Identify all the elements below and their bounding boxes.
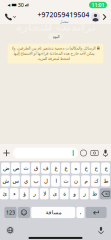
staticText: ئ [2, 191, 6, 197]
staticText: مسافة [45, 209, 61, 215]
button[interactable]: ى [50, 188, 59, 199]
button[interactable]: Next keyboard [6, 226, 14, 234]
button[interactable]: ظ [90, 188, 99, 199]
staticText: ة [63, 191, 66, 197]
staticText: ط [103, 178, 108, 184]
button[interactable]: Contact info [91, 12, 100, 21]
button[interactable]: ث [21, 163, 30, 174]
button[interactable]: Stickers [78, 144, 89, 162]
button[interactable]: ع [61, 163, 70, 174]
button[interactable]: خ [81, 163, 90, 174]
button[interactable]: ن [71, 175, 80, 187]
staticText: 123 [6, 209, 15, 216]
staticText: ح [94, 165, 97, 171]
button[interactable]: ف [41, 163, 50, 174]
button[interactable]: ؤ [20, 188, 29, 199]
staticText: ص [12, 165, 18, 171]
staticText: ترايدنت للتجارة [15, 21, 95, 33]
button[interactable]: ت [61, 175, 70, 187]
staticText: ل [43, 178, 47, 184]
button[interactable]: ل [41, 175, 50, 187]
button[interactable]: ح [91, 163, 100, 174]
staticText: الرسائل والمكالمات محمية بتشفير تام بين … [11, 46, 95, 61]
button[interactable]: ط [101, 175, 110, 187]
button[interactable]: ز [80, 188, 89, 199]
button[interactable]: Voice message [100, 144, 111, 162]
staticText: ث [23, 165, 28, 171]
staticText: اليوم [52, 34, 59, 39]
staticText: لا [43, 191, 46, 197]
staticText: ع [64, 165, 67, 171]
button[interactable]: غ [51, 163, 60, 174]
button[interactable]: لا [40, 188, 49, 199]
button[interactable]: ق [31, 163, 40, 174]
button[interactable]: Dictation [97, 226, 105, 234]
staticText: × [105, 190, 108, 197]
button[interactable]: Key [18, 207, 30, 218]
staticText: ◂ [7, 2, 10, 8]
staticText: ق [33, 165, 37, 171]
staticText: ء [13, 191, 16, 197]
button[interactable]: الرسائل والمكالمات محمية بتشفير تام بين … [7, 43, 103, 63]
staticText: ن [73, 178, 77, 184]
staticText: و [73, 191, 76, 197]
button[interactable]: Call [3, 10, 18, 24]
staticText: ش [2, 178, 9, 184]
staticText: غ [54, 165, 57, 171]
button[interactable]: Key [100, 188, 111, 199]
staticText: ى [52, 191, 56, 197]
button[interactable]: Return [86, 207, 107, 218]
button[interactable]: ب [31, 175, 40, 187]
staticText: ف [42, 165, 48, 171]
button[interactable]: ج [101, 163, 110, 174]
staticText: 11:01 [91, 1, 104, 9]
button[interactable]: ئ [0, 188, 9, 199]
staticText: م [84, 178, 87, 184]
staticText: ا [55, 178, 56, 184]
button[interactable]: Camera [89, 144, 100, 162]
button[interactable]: م [81, 175, 90, 187]
button[interactable]: 123 [4, 207, 17, 218]
staticText: متصل [59, 19, 68, 24]
button[interactable]: Attach [0, 144, 13, 162]
staticText: ؤ [23, 191, 26, 197]
button[interactable]: Back [100, 10, 109, 24]
button[interactable]: ء [10, 188, 19, 199]
button[interactable]: ي [21, 175, 30, 187]
button[interactable]: ش [1, 175, 10, 187]
button[interactable]: ا [51, 175, 60, 187]
button[interactable]: س [11, 175, 20, 187]
staticText: ه [74, 165, 77, 171]
button[interactable]: و [70, 188, 79, 199]
staticText: ي [23, 178, 27, 184]
button[interactable]: ض [1, 163, 10, 174]
staticText: ر [33, 191, 36, 197]
button[interactable]: ص [11, 163, 20, 174]
button[interactable]: ، [76, 207, 84, 218]
staticText: ظ [92, 191, 97, 197]
staticText: ك [93, 178, 97, 184]
staticText: س [12, 178, 19, 184]
button[interactable]: ه [71, 163, 80, 174]
staticText: 30 [18, 1, 24, 9]
staticText: ج [104, 165, 107, 171]
button[interactable]: مسافة [31, 207, 75, 218]
staticText: ز [83, 191, 86, 197]
staticText: ت [63, 178, 68, 184]
button[interactable]: ك [91, 175, 100, 187]
button[interactable]: ة [60, 188, 69, 199]
staticText: ض [2, 165, 8, 171]
staticText: +972059419504 [37, 10, 89, 19]
button[interactable]: ر [30, 188, 39, 199]
staticText: ، [79, 209, 81, 215]
staticText: خ [84, 165, 87, 171]
staticText: ب [33, 178, 38, 184]
